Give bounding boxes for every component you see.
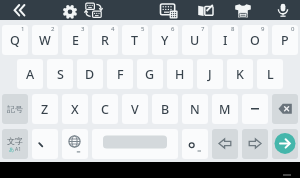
- staticText: 6: [171, 25, 175, 33]
- button[interactable]: E: [62, 25, 88, 55]
- staticText: U: [190, 32, 200, 49]
- staticText: Z: [41, 101, 49, 118]
- staticText: A1: [15, 146, 22, 153]
- button[interactable]: O: [242, 25, 268, 55]
- button[interactable]: G: [137, 59, 163, 89]
- staticText: P: [281, 32, 289, 49]
- button[interactable]: [272, 129, 298, 159]
- staticText: W: [39, 32, 51, 49]
- staticText: 3: [81, 25, 85, 33]
- staticText: F: [117, 66, 124, 83]
- staticText: G: [145, 66, 155, 83]
- button[interactable]: R: [92, 25, 118, 55]
- button[interactable]: [270, 0, 296, 20]
- staticText: R: [101, 32, 109, 49]
- button[interactable]: N: [182, 94, 208, 124]
- button[interactable]: L: [257, 59, 283, 89]
- button[interactable]: U: [182, 25, 208, 55]
- button[interactable]: D: [77, 59, 103, 89]
- staticText: A: [26, 66, 35, 83]
- button[interactable]: [230, 0, 256, 20]
- button[interactable]: [62, 129, 88, 159]
- staticText: E: [72, 32, 79, 49]
- staticText: 8: [231, 25, 235, 33]
- button[interactable]: P: [272, 25, 298, 55]
- button[interactable]: [156, 0, 182, 20]
- button[interactable]: W: [32, 25, 58, 55]
- staticText: H: [175, 66, 185, 83]
- button[interactable]: F: [107, 59, 133, 89]
- staticText: I: [223, 32, 228, 49]
- staticText: T: [131, 32, 139, 49]
- button[interactable]: [81, 0, 107, 20]
- staticText: M: [219, 101, 231, 118]
- staticText: 2: [51, 25, 55, 33]
- button[interactable]: Y: [152, 25, 178, 55]
- staticText: Y: [161, 32, 169, 49]
- staticText: X: [71, 101, 79, 118]
- staticText: K: [236, 66, 244, 83]
- button[interactable]: H: [167, 59, 193, 89]
- button[interactable]: [32, 129, 58, 159]
- button[interactable]: [272, 94, 298, 124]
- staticText: 記号: [7, 104, 23, 114]
- button[interactable]: 文字: [2, 129, 28, 159]
- button[interactable]: C: [92, 94, 118, 124]
- button[interactable]: V: [122, 94, 148, 124]
- staticText: J: [208, 66, 212, 83]
- staticText: 4: [111, 25, 115, 33]
- button[interactable]: S: [47, 59, 73, 89]
- button[interactable]: [182, 129, 208, 159]
- staticText: 9: [261, 25, 265, 33]
- button[interactable]: X: [62, 94, 88, 124]
- staticText: S: [57, 66, 64, 83]
- button[interactable]: T: [122, 25, 148, 55]
- button[interactable]: [242, 129, 268, 159]
- staticText: 0: [291, 25, 295, 33]
- staticText: B: [161, 101, 170, 118]
- button[interactable]: Z: [32, 94, 58, 124]
- staticText: L: [267, 66, 274, 83]
- button[interactable]: B: [152, 94, 178, 124]
- button[interactable]: [193, 0, 219, 20]
- button[interactable]: [57, 0, 83, 20]
- staticText: D: [85, 66, 95, 83]
- button[interactable]: K: [227, 59, 253, 89]
- button[interactable]: [212, 129, 238, 159]
- button[interactable]: J: [197, 59, 223, 89]
- staticText: 5: [141, 25, 145, 33]
- button[interactable]: 記号: [2, 94, 28, 124]
- button[interactable]: M: [212, 94, 238, 124]
- button[interactable]: A: [17, 59, 43, 89]
- staticText: 1: [21, 25, 25, 33]
- button[interactable]: Q: [2, 25, 28, 55]
- button[interactable]: [242, 94, 268, 124]
- staticText: N: [190, 101, 200, 118]
- staticText: あ: [9, 146, 15, 152]
- staticText: O: [250, 32, 260, 49]
- button[interactable]: [5, 0, 31, 20]
- staticText: 文字: [7, 136, 23, 146]
- button[interactable]: I: [212, 25, 238, 55]
- staticText: C: [101, 101, 109, 118]
- button[interactable]: [92, 129, 178, 159]
- staticText: 7: [201, 25, 205, 33]
- staticText: V: [131, 101, 139, 118]
- staticText: Q: [10, 32, 20, 49]
